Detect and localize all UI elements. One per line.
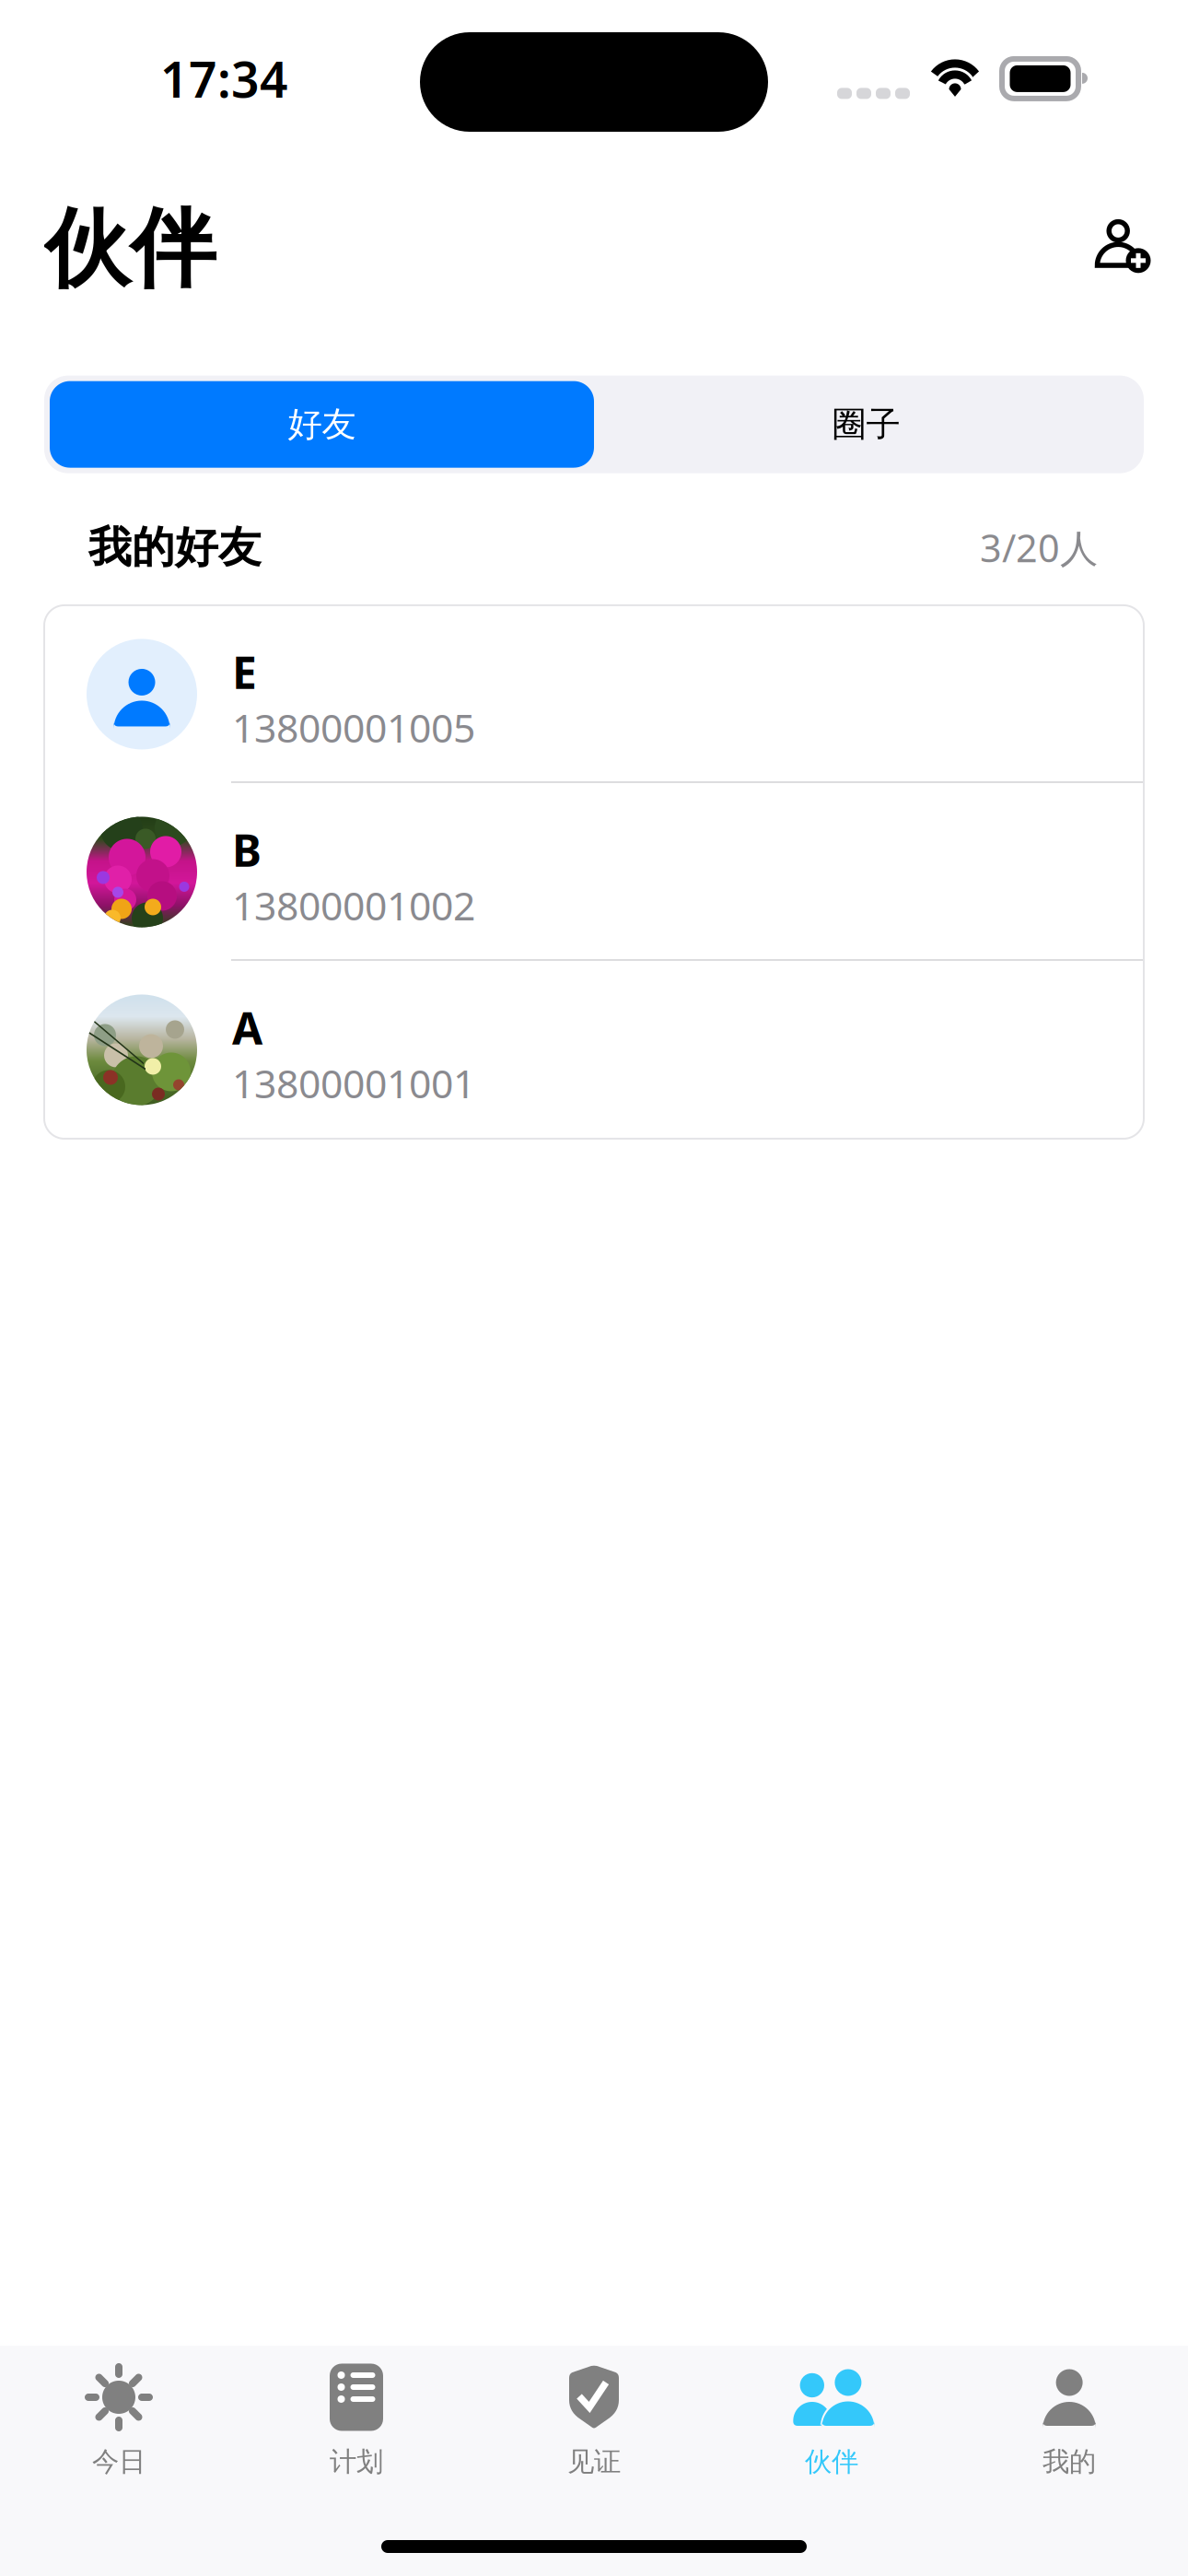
staticText: A: [232, 998, 262, 1057]
button[interactable]: Add friend: [1090, 213, 1157, 285]
staticText: E: [232, 642, 257, 701]
staticText: 我的: [1042, 2445, 1096, 2478]
button[interactable]: 圈子: [594, 381, 1138, 468]
button[interactable]: 见证: [475, 2351, 713, 2489]
staticText: 好友: [288, 403, 356, 446]
staticText: 3/20人: [980, 522, 1098, 573]
staticText: 计划: [330, 2445, 383, 2478]
button[interactable]: 好友: [50, 381, 594, 468]
staticText: 伙伴: [44, 196, 215, 302]
staticText: 见证: [567, 2445, 621, 2478]
button[interactable]: 今日: [0, 2351, 238, 2489]
button[interactable]: 我的: [950, 2351, 1188, 2489]
staticText: 伙伴: [805, 2445, 858, 2478]
staticText: 今日: [92, 2445, 146, 2478]
button[interactable]: A: [44, 961, 1144, 1139]
staticText: 13800001002: [232, 879, 475, 931]
staticText: B: [232, 820, 262, 879]
staticText: 13800001001: [232, 1057, 475, 1109]
staticText: 13800001005: [232, 701, 475, 753]
staticText: 我的好友: [88, 521, 262, 574]
staticText: 圈子: [832, 403, 900, 446]
button[interactable]: B: [44, 783, 1144, 961]
button[interactable]: 计划: [238, 2351, 475, 2489]
staticText: 17:34: [160, 46, 288, 111]
button[interactable]: E: [44, 605, 1144, 783]
button[interactable]: 伙伴: [713, 2351, 950, 2489]
